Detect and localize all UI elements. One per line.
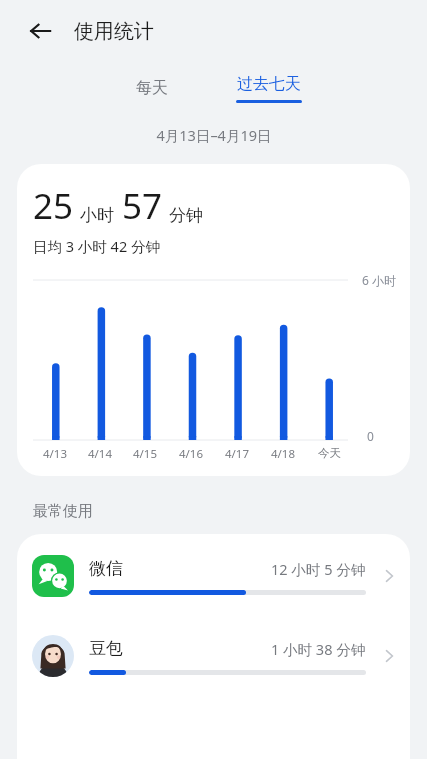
- staticText: 4月13日–4月19日: [156, 125, 272, 145]
- staticText: 12 小时 5 分钟: [271, 559, 366, 579]
- staticText: 4/15: [133, 446, 158, 462]
- button[interactable]: 过去七天: [228, 74, 310, 103]
- button[interactable]: 豆包: [17, 628, 410, 684]
- staticText: 4/16: [179, 446, 204, 462]
- staticText: 4/14: [88, 446, 113, 462]
- staticText: 豆包: [89, 638, 123, 659]
- other: 查看详情: [376, 643, 402, 669]
- staticText: 6 小时: [362, 272, 396, 288]
- staticText: 1 小时 38 分钟: [271, 639, 366, 659]
- staticText: 4/18: [271, 446, 296, 462]
- staticText: 25: [33, 182, 74, 230]
- staticText: 最常使用: [33, 502, 93, 521]
- staticText: 今天: [318, 446, 341, 460]
- button[interactable]: 微信: [17, 548, 410, 604]
- staticText: 日均 3 小时 42 分钟: [33, 236, 160, 256]
- staticText: 小时: [80, 205, 114, 226]
- button[interactable]: 每天: [118, 72, 186, 104]
- staticText: 0: [367, 428, 374, 444]
- other: 查看详情: [376, 563, 402, 589]
- staticText: 分钟: [169, 205, 203, 226]
- button[interactable]: 25: [17, 164, 410, 476]
- staticText: 57: [122, 182, 163, 230]
- button[interactable]: 返回: [18, 9, 62, 53]
- staticText: 过去七天: [237, 74, 301, 94]
- staticText: 使用统计: [74, 19, 154, 44]
- staticText: 4/17: [225, 446, 250, 462]
- staticText: 每天: [136, 78, 168, 98]
- staticText: 微信: [89, 558, 123, 579]
- staticText: 4/13: [43, 446, 68, 462]
